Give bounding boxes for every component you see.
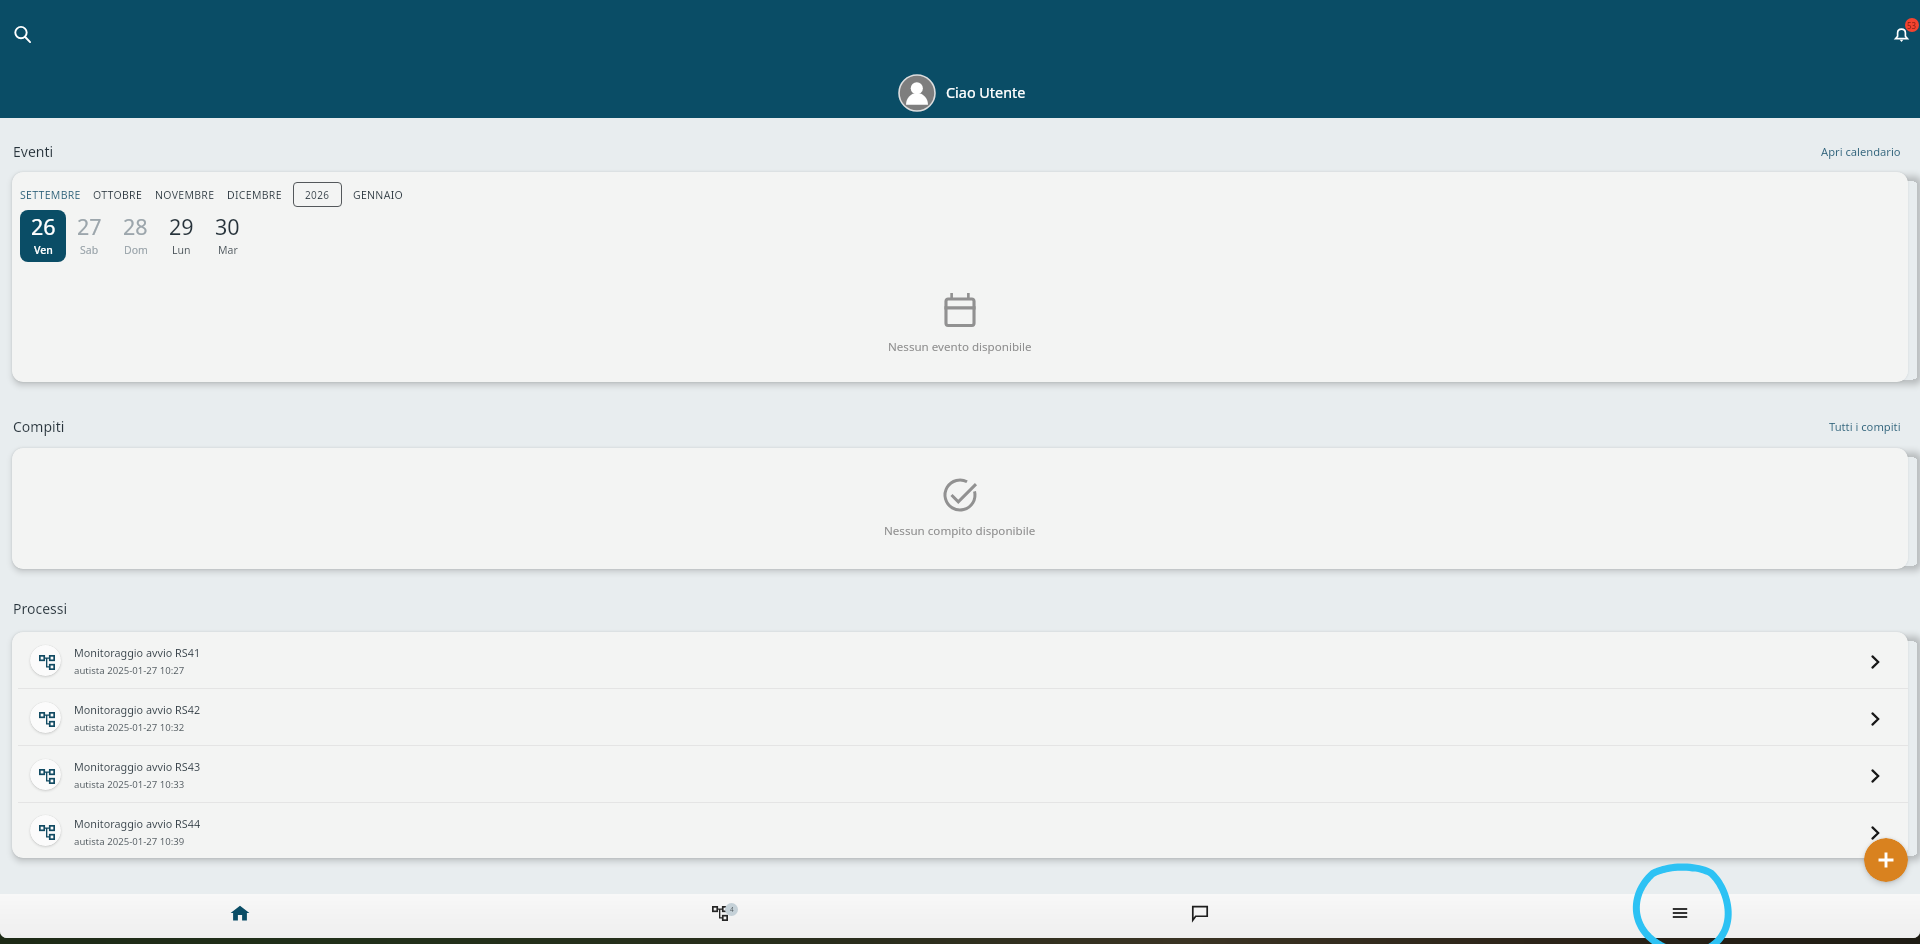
- staticText: 26: [31, 212, 56, 241]
- button[interactable]: Aggiungi: [1864, 838, 1908, 882]
- staticText: SETTEMBRE: [20, 188, 81, 202]
- staticText: 28: [123, 212, 148, 241]
- button[interactable]: 28: [112, 210, 158, 262]
- staticText: 53: [1907, 20, 1917, 31]
- staticText: Ven: [34, 243, 53, 257]
- staticText: Monitoraggio avvio RS44: [74, 816, 201, 831]
- button[interactable]: Tutti i compiti: [1827, 406, 1903, 425]
- button[interactable]: Monitoraggio avvio RS42: [12, 689, 1908, 746]
- staticText: Compiti: [13, 417, 65, 436]
- staticText: Ciao Utente: [946, 83, 1026, 103]
- button[interactable]: 26: [20, 210, 66, 262]
- button[interactable]: 30: [204, 210, 250, 262]
- button[interactable]: Monitoraggio avvio RS44: [12, 803, 1908, 858]
- staticText: Dom: [124, 243, 148, 257]
- staticText: autista 2025-01-27 10:33: [74, 778, 185, 791]
- staticText: GENNAIO: [353, 188, 404, 202]
- staticText: autista 2025-01-27 10:27: [74, 664, 185, 677]
- staticText: Processi: [13, 599, 68, 618]
- button[interactable]: Monitoraggio avvio RS43: [12, 746, 1908, 803]
- button[interactable]: Menu: [1440, 894, 1920, 938]
- staticText: Mar: [218, 243, 238, 257]
- staticText: 29: [169, 212, 194, 241]
- button[interactable]: Notifiche: [1884, 16, 1920, 52]
- staticText: autista 2025-01-27 10:32: [74, 721, 185, 734]
- button[interactable]: NOVEMBRE: [155, 185, 215, 205]
- button[interactable]: Home: [0, 894, 480, 938]
- button[interactable]: Messaggi: [960, 894, 1440, 938]
- button[interactable]: Ciao Utente: [898, 74, 1026, 112]
- button[interactable]: OTTOBRE: [93, 185, 143, 205]
- button[interactable]: Monitoraggio avvio RS41: [12, 632, 1908, 689]
- staticText: 27: [77, 212, 102, 241]
- staticText: Eventi: [13, 142, 54, 161]
- button[interactable]: GENNAIO: [353, 185, 404, 205]
- staticText: DICEMBRE: [227, 188, 282, 202]
- staticText: OTTOBRE: [93, 188, 143, 202]
- staticText: Nessun compito disponibile: [884, 523, 1036, 539]
- staticText: Monitoraggio avvio RS43: [74, 759, 201, 774]
- button[interactable]: 2026: [293, 182, 342, 207]
- staticText: NOVEMBRE: [155, 188, 215, 202]
- staticText: autista 2025-01-27 10:39: [74, 835, 185, 848]
- staticText: Apri calendario: [1821, 144, 1901, 159]
- staticText: Monitoraggio avvio RS42: [74, 702, 201, 717]
- button[interactable]: DICEMBRE: [227, 185, 282, 205]
- staticText: Sab: [80, 243, 99, 257]
- button[interactable]: SETTEMBRE: [20, 185, 81, 205]
- staticText: Lun: [172, 243, 191, 257]
- button[interactable]: Apri calendario: [1819, 136, 1903, 155]
- button[interactable]: Cerca: [6, 18, 38, 50]
- staticText: Monitoraggio avvio RS41: [74, 645, 201, 660]
- button[interactable]: 29: [158, 210, 204, 262]
- staticText: Nessun evento disponibile: [888, 339, 1032, 355]
- button[interactable]: Processi: [480, 894, 960, 938]
- staticText: 4: [730, 905, 734, 914]
- staticText: Tutti i compiti: [1829, 419, 1901, 434]
- staticText: 30: [215, 212, 240, 241]
- staticText: 2026: [305, 188, 330, 201]
- button[interactable]: 27: [66, 210, 112, 262]
